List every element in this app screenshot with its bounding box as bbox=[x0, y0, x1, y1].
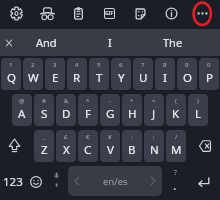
staticText: 123 bbox=[3, 174, 23, 190]
staticText: H bbox=[128, 106, 137, 122]
button[interactable]: Info bbox=[157, 0, 185, 27]
staticText: 2 bbox=[31, 61, 35, 69]
staticText: G bbox=[106, 106, 115, 122]
button[interactable]: ) bbox=[188, 94, 208, 126]
button[interactable]: Enter bbox=[187, 164, 220, 200]
staticText: U bbox=[139, 70, 148, 86]
button[interactable]: ; bbox=[144, 130, 164, 162]
button[interactable]: / bbox=[166, 130, 186, 162]
button[interactable]: 2 bbox=[23, 58, 43, 90]
staticText: R bbox=[73, 70, 81, 86]
button[interactable]: GIF bbox=[95, 0, 123, 27]
button[interactable]: ( bbox=[166, 94, 186, 126]
button[interactable]: 7 bbox=[133, 58, 153, 90]
staticText: 8 bbox=[163, 61, 167, 69]
button[interactable]: 1 bbox=[1, 58, 21, 90]
button[interactable]: 123 bbox=[0, 164, 25, 200]
staticText: @ bbox=[19, 97, 25, 105]
staticText: M bbox=[171, 142, 182, 158]
button[interactable]: Emoji bbox=[25, 164, 46, 200]
staticText: : bbox=[131, 133, 133, 141]
staticText: 7 bbox=[141, 61, 145, 69]
button[interactable]: Backspace bbox=[187, 128, 220, 164]
button[interactable]: ¥ bbox=[100, 130, 120, 162]
button[interactable]: I bbox=[78, 29, 141, 56]
button[interactable]: @ bbox=[12, 94, 32, 126]
staticText: ) bbox=[197, 97, 199, 105]
button[interactable]: 4 bbox=[67, 58, 87, 90]
staticText: F bbox=[85, 106, 91, 122]
staticText: J bbox=[152, 106, 156, 122]
staticText: A bbox=[18, 106, 26, 122]
staticText: The bbox=[163, 35, 183, 50]
staticText: K bbox=[172, 106, 180, 122]
staticText: O bbox=[183, 70, 192, 86]
staticText: en/es bbox=[103, 175, 128, 188]
staticText: € bbox=[86, 133, 90, 141]
button[interactable]: And bbox=[15, 29, 78, 56]
button[interactable]: _ bbox=[34, 130, 54, 162]
button[interactable]: 5 bbox=[89, 58, 109, 90]
staticText: L bbox=[195, 106, 202, 122]
staticText: S bbox=[41, 106, 48, 122]
staticText: / bbox=[175, 133, 178, 141]
staticText: I bbox=[163, 70, 167, 86]
staticText: # bbox=[42, 97, 46, 105]
staticText: I bbox=[108, 35, 112, 50]
staticText: 0 bbox=[207, 61, 211, 69]
button[interactable]: Clipboard bbox=[64, 0, 92, 27]
staticText: V bbox=[107, 142, 114, 158]
button[interactable]: Voice input bbox=[46, 164, 67, 200]
staticText: Y bbox=[118, 70, 125, 86]
staticText: And bbox=[36, 35, 57, 50]
button[interactable]: 6 bbox=[111, 58, 131, 90]
staticText: W bbox=[28, 70, 39, 86]
staticText: 6 bbox=[119, 61, 123, 69]
staticText: - bbox=[109, 97, 111, 105]
staticText: GIF bbox=[105, 10, 114, 17]
staticText: X bbox=[63, 142, 70, 158]
staticText: ; bbox=[153, 133, 155, 141]
button[interactable]: + bbox=[122, 94, 142, 126]
staticText: £ bbox=[64, 133, 68, 141]
button[interactable]: : bbox=[122, 130, 142, 162]
button[interactable]: Incognito mode bbox=[33, 0, 61, 27]
button[interactable]: - bbox=[100, 94, 120, 126]
button[interactable]: en/es bbox=[68, 166, 162, 196]
button[interactable]: € bbox=[78, 130, 98, 162]
button[interactable]: 9 bbox=[177, 58, 197, 90]
staticText: 5 bbox=[97, 61, 101, 69]
button[interactable]: ? bbox=[163, 164, 187, 200]
staticText: E bbox=[52, 70, 59, 86]
staticText: D bbox=[62, 106, 71, 122]
staticText: B bbox=[128, 142, 136, 158]
staticText: ( bbox=[175, 97, 177, 105]
staticText: . bbox=[173, 177, 177, 194]
staticText: = bbox=[152, 97, 156, 105]
button[interactable]: Hide suggestions bbox=[0, 29, 18, 56]
staticText: 4 bbox=[75, 61, 79, 69]
button[interactable]: More options bbox=[188, 0, 216, 27]
staticText: _ bbox=[43, 133, 46, 141]
staticText: 1 bbox=[9, 61, 13, 69]
button[interactable]: # bbox=[34, 94, 54, 126]
staticText: T bbox=[96, 70, 103, 86]
staticText: N bbox=[150, 142, 159, 158]
button[interactable]: 8 bbox=[155, 58, 175, 90]
button[interactable]: Shift bbox=[0, 128, 33, 164]
staticText: + bbox=[130, 97, 134, 105]
button[interactable]: The bbox=[141, 29, 204, 56]
button[interactable]: 0 bbox=[199, 58, 219, 90]
button[interactable]: & bbox=[56, 94, 76, 126]
staticText: P bbox=[206, 70, 213, 86]
staticText: 3 bbox=[53, 61, 57, 69]
button[interactable]: = bbox=[144, 94, 164, 126]
button[interactable]: £ bbox=[56, 130, 76, 162]
button[interactable]: Stickers bbox=[126, 0, 154, 27]
staticText: * bbox=[86, 97, 90, 105]
button[interactable]: * bbox=[78, 94, 98, 126]
button[interactable]: Settings bbox=[2, 0, 30, 27]
staticText: Z bbox=[41, 142, 48, 158]
staticText: C bbox=[84, 142, 92, 158]
button[interactable]: 3 bbox=[45, 58, 65, 90]
